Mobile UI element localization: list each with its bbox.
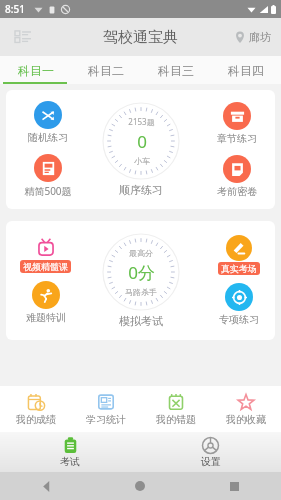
button[interactable]: 章节练习 <box>215 102 259 145</box>
button[interactable]: 廊坊 <box>232 26 273 48</box>
staticText: 廊坊 <box>249 30 271 44</box>
staticText: 0 <box>137 130 147 153</box>
staticText: 小车 <box>134 156 150 166</box>
staticText: 我的成绩 <box>16 413 56 426</box>
button[interactable]: Menu <box>8 22 38 52</box>
button[interactable]: 我的错题 <box>141 386 211 432</box>
staticText: 视频精髓课 <box>23 261 68 272</box>
staticText: 2153题 <box>128 116 155 127</box>
button[interactable]: 科目一 <box>0 56 71 84</box>
staticText: 我的收藏 <box>226 413 266 426</box>
button[interactable]: 科目三 <box>141 56 211 84</box>
button[interactable]: 考前密卷 <box>215 155 259 198</box>
other: Back <box>41 481 52 492</box>
staticText: 真实考场 <box>221 263 257 274</box>
button[interactable]: 精简500题 <box>22 154 74 198</box>
staticText: 科目一 <box>18 63 54 78</box>
staticText: 章节练习 <box>217 132 257 145</box>
staticText: 顺序练习 <box>119 183 163 197</box>
staticText: 0分 <box>128 261 155 284</box>
staticText: 驾校通宝典 <box>103 28 178 47</box>
button[interactable]: 科目四 <box>211 56 281 84</box>
staticText: 科目二 <box>88 63 124 78</box>
button[interactable]: 真实考场 <box>218 235 260 275</box>
staticText: 学习统计 <box>86 413 126 426</box>
staticText: 难题特训 <box>26 311 66 324</box>
staticText: 考试 <box>60 455 80 468</box>
button[interactable]: 随机练习 <box>26 101 70 144</box>
button[interactable]: 难题特训 <box>24 281 68 324</box>
staticText: 随机练习 <box>28 131 68 144</box>
button[interactable]: 我的收藏 <box>211 386 281 432</box>
staticText: 马路杀手 <box>125 287 157 297</box>
staticText: 模拟考试 <box>119 314 163 328</box>
other: Home <box>135 481 145 491</box>
button[interactable]: 学习统计 <box>71 386 141 432</box>
staticText: 科目四 <box>228 63 264 78</box>
button[interactable]: 我的成绩 <box>0 386 71 432</box>
staticText: 8:51 <box>5 2 25 16</box>
staticText: 精简500题 <box>24 184 72 198</box>
staticText: 我的错题 <box>156 413 196 426</box>
button[interactable]: 考试 <box>0 432 140 472</box>
staticText: 科目三 <box>158 63 194 78</box>
button[interactable]: 专项练习 <box>217 283 261 326</box>
staticText: 专项练习 <box>219 313 259 326</box>
staticText: 设置 <box>201 455 221 468</box>
staticText: 考前密卷 <box>217 185 257 198</box>
button[interactable]: 设置 <box>140 432 281 472</box>
button[interactable]: 视频精髓课 <box>20 237 71 273</box>
staticText: 最高分 <box>129 248 153 258</box>
button[interactable]: 科目二 <box>71 56 141 84</box>
